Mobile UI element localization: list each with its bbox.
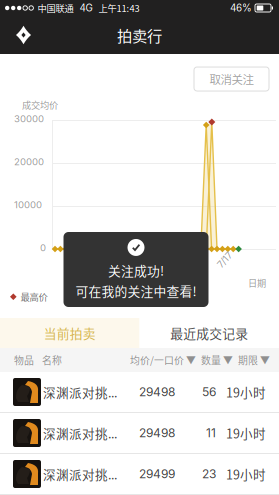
staticText: 名称 — [42, 353, 62, 367]
staticText: 10000 — [14, 199, 42, 211]
staticText: 20000 — [14, 156, 44, 168]
staticText: 数量 ▼ — [201, 353, 233, 367]
staticText: 拍卖行 — [117, 24, 162, 46]
staticText: 7/3 — [118, 254, 132, 266]
button[interactable]: Menu — [0, 15, 43, 55]
button[interactable]: 深渊派对挑... — [0, 413, 279, 454]
staticText: 物品 — [14, 353, 34, 367]
staticText: 46% — [230, 2, 252, 14]
staticText: 0 — [40, 242, 46, 254]
staticText: 19小时 — [226, 383, 266, 401]
staticText: 深渊派对挑... — [43, 383, 117, 401]
button[interactable]: 深渊派对挑... — [0, 454, 279, 495]
staticText: 关注成功! — [108, 261, 164, 279]
staticText: 56 — [202, 385, 216, 399]
staticText: 均价/一口价 ▼ — [130, 353, 196, 367]
staticText: 当前拍卖 — [44, 324, 96, 342]
staticText: 29499 — [139, 467, 175, 481]
staticText: 29498 — [139, 426, 175, 440]
staticText: 30000 — [14, 113, 44, 125]
staticText: 23 — [202, 467, 216, 481]
staticText: 7/17 — [216, 254, 233, 266]
staticText: 取消关注 — [209, 71, 253, 87]
staticText: 11 — [206, 426, 216, 440]
staticText: 最高价 — [21, 290, 48, 303]
staticText: 19小时 — [226, 424, 266, 442]
staticText: 中国联通 — [37, 1, 73, 15]
button[interactable]: 最近成交记录 — [139, 318, 279, 348]
staticText: 成交均价 — [22, 98, 58, 111]
button[interactable]: 均价/一口价 ▼ — [130, 353, 196, 367]
staticText: 深渊派对挑... — [43, 465, 117, 483]
button[interactable]: 期限 ▼ — [233, 353, 270, 367]
staticText: 上午11:43 — [98, 1, 139, 15]
staticText: 可在我的关注中查看! — [75, 281, 196, 300]
staticText: 29498 — [139, 385, 175, 399]
button[interactable]: 当前拍卖 — [0, 318, 139, 348]
staticText: 期限 ▼ — [238, 353, 270, 367]
staticText: 日期 — [248, 276, 266, 289]
button[interactable]: 取消关注 — [194, 67, 269, 91]
staticText: 19小时 — [226, 465, 266, 483]
staticText: 最近成交记录 — [170, 324, 248, 342]
button[interactable]: 数量 ▼ — [196, 353, 233, 367]
button[interactable]: 深渊派对挑... — [0, 372, 279, 413]
staticText: 深渊派对挑... — [43, 424, 117, 442]
staticText: 4G — [79, 2, 92, 14]
